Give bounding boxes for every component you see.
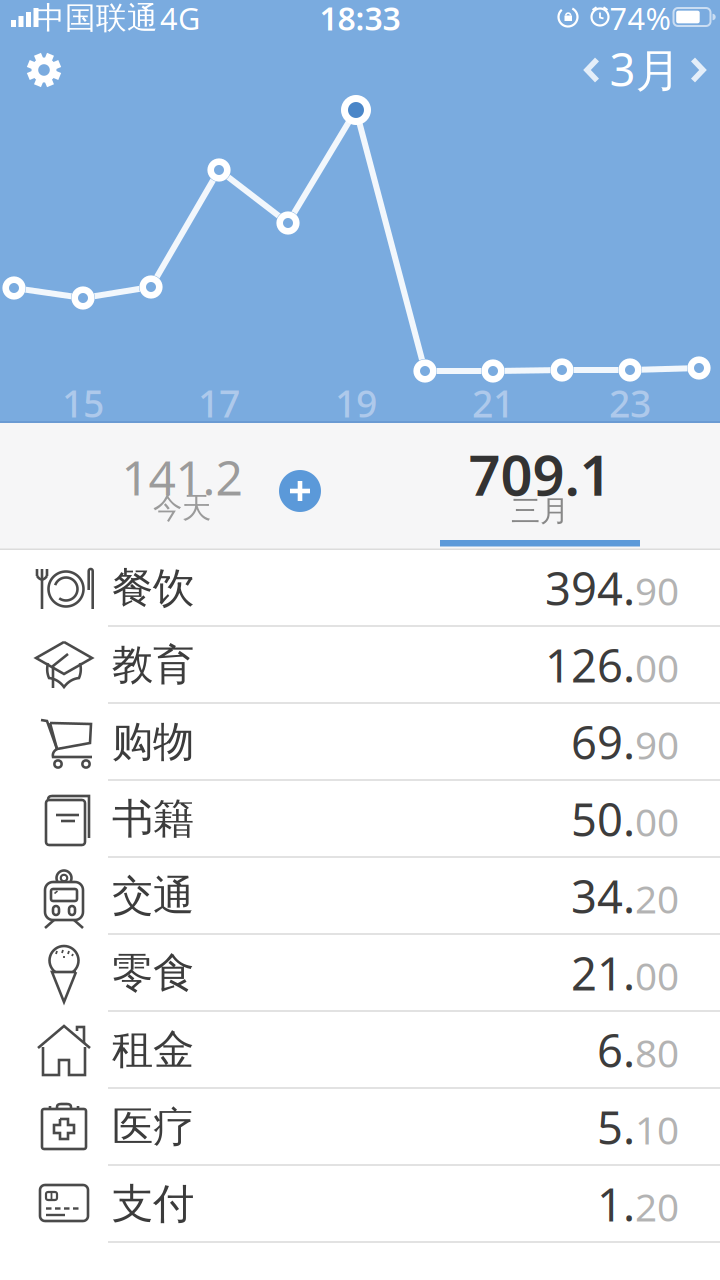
button[interactable]: 支付 [0, 1166, 720, 1243]
staticText: 5. [597, 1097, 635, 1157]
staticText: 租金 [112, 1025, 194, 1075]
staticText: 141.2 [121, 445, 242, 509]
button[interactable]: 书籍 [0, 781, 720, 858]
staticText: 3月 [609, 39, 680, 99]
button[interactable]: 上月 [584, 57, 608, 83]
button[interactable]: 餐饮 [0, 550, 720, 627]
button[interactable]: 记一笔 [279, 470, 321, 512]
staticText: 00 [635, 796, 679, 847]
staticText: 中国联通 [34, 0, 158, 37]
button[interactable]: 租金 [0, 1012, 720, 1089]
staticText: 21. [571, 943, 635, 1003]
button[interactable]: 交通 [0, 858, 720, 935]
staticText: 90 [635, 719, 679, 770]
staticText: 18:33 [319, 0, 400, 39]
staticText: 餐饮 [112, 563, 194, 613]
staticText: 00 [635, 642, 679, 693]
button[interactable]: 购物 [0, 704, 720, 781]
staticText: 90 [635, 565, 679, 616]
staticText: 19 [335, 378, 377, 428]
staticText: 交通 [112, 871, 194, 921]
staticText: 20 [635, 1181, 679, 1232]
staticText: 709.1 [468, 437, 611, 511]
staticText: 15 [62, 378, 104, 428]
staticText: 今天 [153, 490, 211, 526]
staticText: 17 [198, 378, 240, 428]
staticText: 书籍 [112, 794, 194, 844]
staticText: 80 [635, 1027, 679, 1078]
staticText: 50. [571, 789, 635, 849]
staticText: 6. [597, 1020, 635, 1080]
staticText: 69. [571, 712, 635, 772]
staticText: 支付 [112, 1179, 194, 1229]
staticText: 三月 [511, 493, 569, 529]
button[interactable]: 零食 [0, 935, 720, 1012]
button[interactable]: 设置 [22, 48, 66, 92]
staticText: 00 [635, 950, 679, 1001]
button[interactable]: 教育 [0, 627, 720, 704]
staticText: 20 [635, 873, 679, 924]
staticText: 21 [472, 378, 514, 428]
staticText: 购物 [112, 717, 194, 767]
button[interactable]: 医疗 [0, 1089, 720, 1166]
staticText: 74% [609, 0, 670, 38]
staticText: 教育 [112, 640, 194, 690]
staticText: 126. [545, 635, 635, 695]
button[interactable]: 141.2 [72, 423, 292, 550]
staticText: 10 [635, 1104, 679, 1155]
staticText: 零食 [112, 948, 194, 998]
staticText: 394. [545, 558, 635, 618]
staticText: 医疗 [112, 1102, 194, 1152]
button[interactable]: 下月 [682, 57, 706, 83]
staticText: 23 [609, 378, 651, 428]
button[interactable]: 709.1 [430, 423, 650, 550]
staticText: 4G [160, 0, 200, 38]
staticText: 34. [571, 866, 635, 926]
button[interactable]: 3月 [609, 39, 680, 99]
staticText: 1. [597, 1174, 635, 1234]
